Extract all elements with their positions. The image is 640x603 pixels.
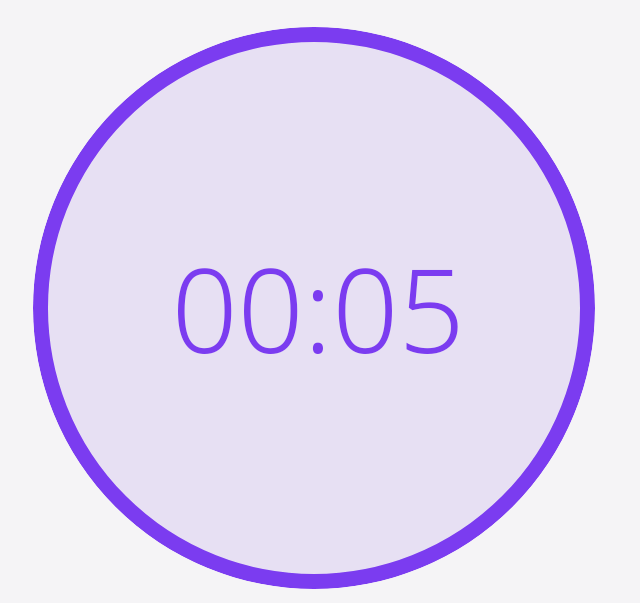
- staticText: 00:05: [171, 229, 465, 387]
- button[interactable]: Countdown timer 00:05: [33, 27, 595, 589]
